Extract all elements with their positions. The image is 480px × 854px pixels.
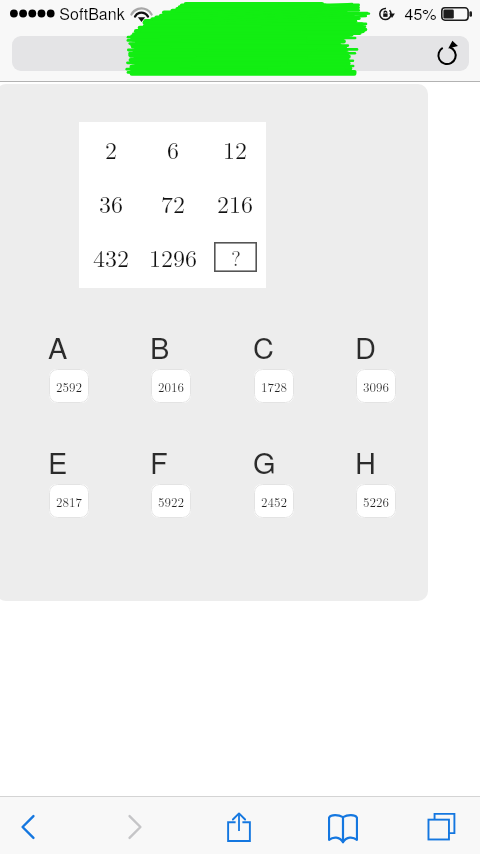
staticText: G [253, 441, 276, 483]
button[interactable]: Reload [436, 42, 460, 66]
staticText: 5922 [158, 492, 184, 510]
button[interactable]: A [49, 326, 90, 403]
staticText: 72 [161, 186, 185, 220]
staticText: F [150, 441, 168, 483]
button[interactable]: F [151, 441, 192, 518]
staticText: 2 [105, 132, 117, 166]
button[interactable]: C [254, 326, 295, 403]
button[interactable]: Forward [111, 797, 159, 854]
button[interactable]: Back [4, 797, 52, 854]
button[interactable]: Share [215, 797, 263, 854]
button[interactable]: H [356, 441, 397, 518]
staticText: 432 [93, 240, 129, 274]
button[interactable]: D [356, 326, 397, 403]
button[interactable]: ? [214, 242, 257, 272]
staticText: 3096 [363, 377, 389, 395]
staticText: 12 [223, 132, 247, 166]
staticText: 45% [404, 2, 437, 25]
staticText: 2592 [56, 377, 82, 395]
staticText: 1296 [149, 240, 197, 274]
staticText: 6 [167, 132, 179, 166]
staticText: 1728 [261, 377, 287, 395]
staticText: 216 [217, 186, 253, 220]
staticText: A [48, 326, 68, 368]
staticText: 2016 [158, 377, 184, 395]
button[interactable]: Reload [12, 36, 469, 71]
staticText: 5226 [363, 492, 389, 510]
button[interactable]: G [254, 441, 295, 518]
staticText: E [48, 441, 68, 483]
button[interactable]: E [49, 441, 90, 518]
staticText: ? [231, 242, 241, 272]
button[interactable]: Tabs [416, 797, 464, 854]
button[interactable]: B [151, 326, 192, 403]
staticText: SoftBank [59, 2, 125, 25]
staticText: 36 [99, 186, 123, 220]
staticText: H [355, 441, 376, 483]
staticText: B [150, 326, 170, 368]
button[interactable]: Bookmarks [319, 797, 367, 854]
staticText: D [355, 326, 376, 368]
staticText: C [253, 326, 274, 368]
staticText: 2452 [261, 492, 287, 510]
staticText: 2817 [56, 492, 82, 510]
